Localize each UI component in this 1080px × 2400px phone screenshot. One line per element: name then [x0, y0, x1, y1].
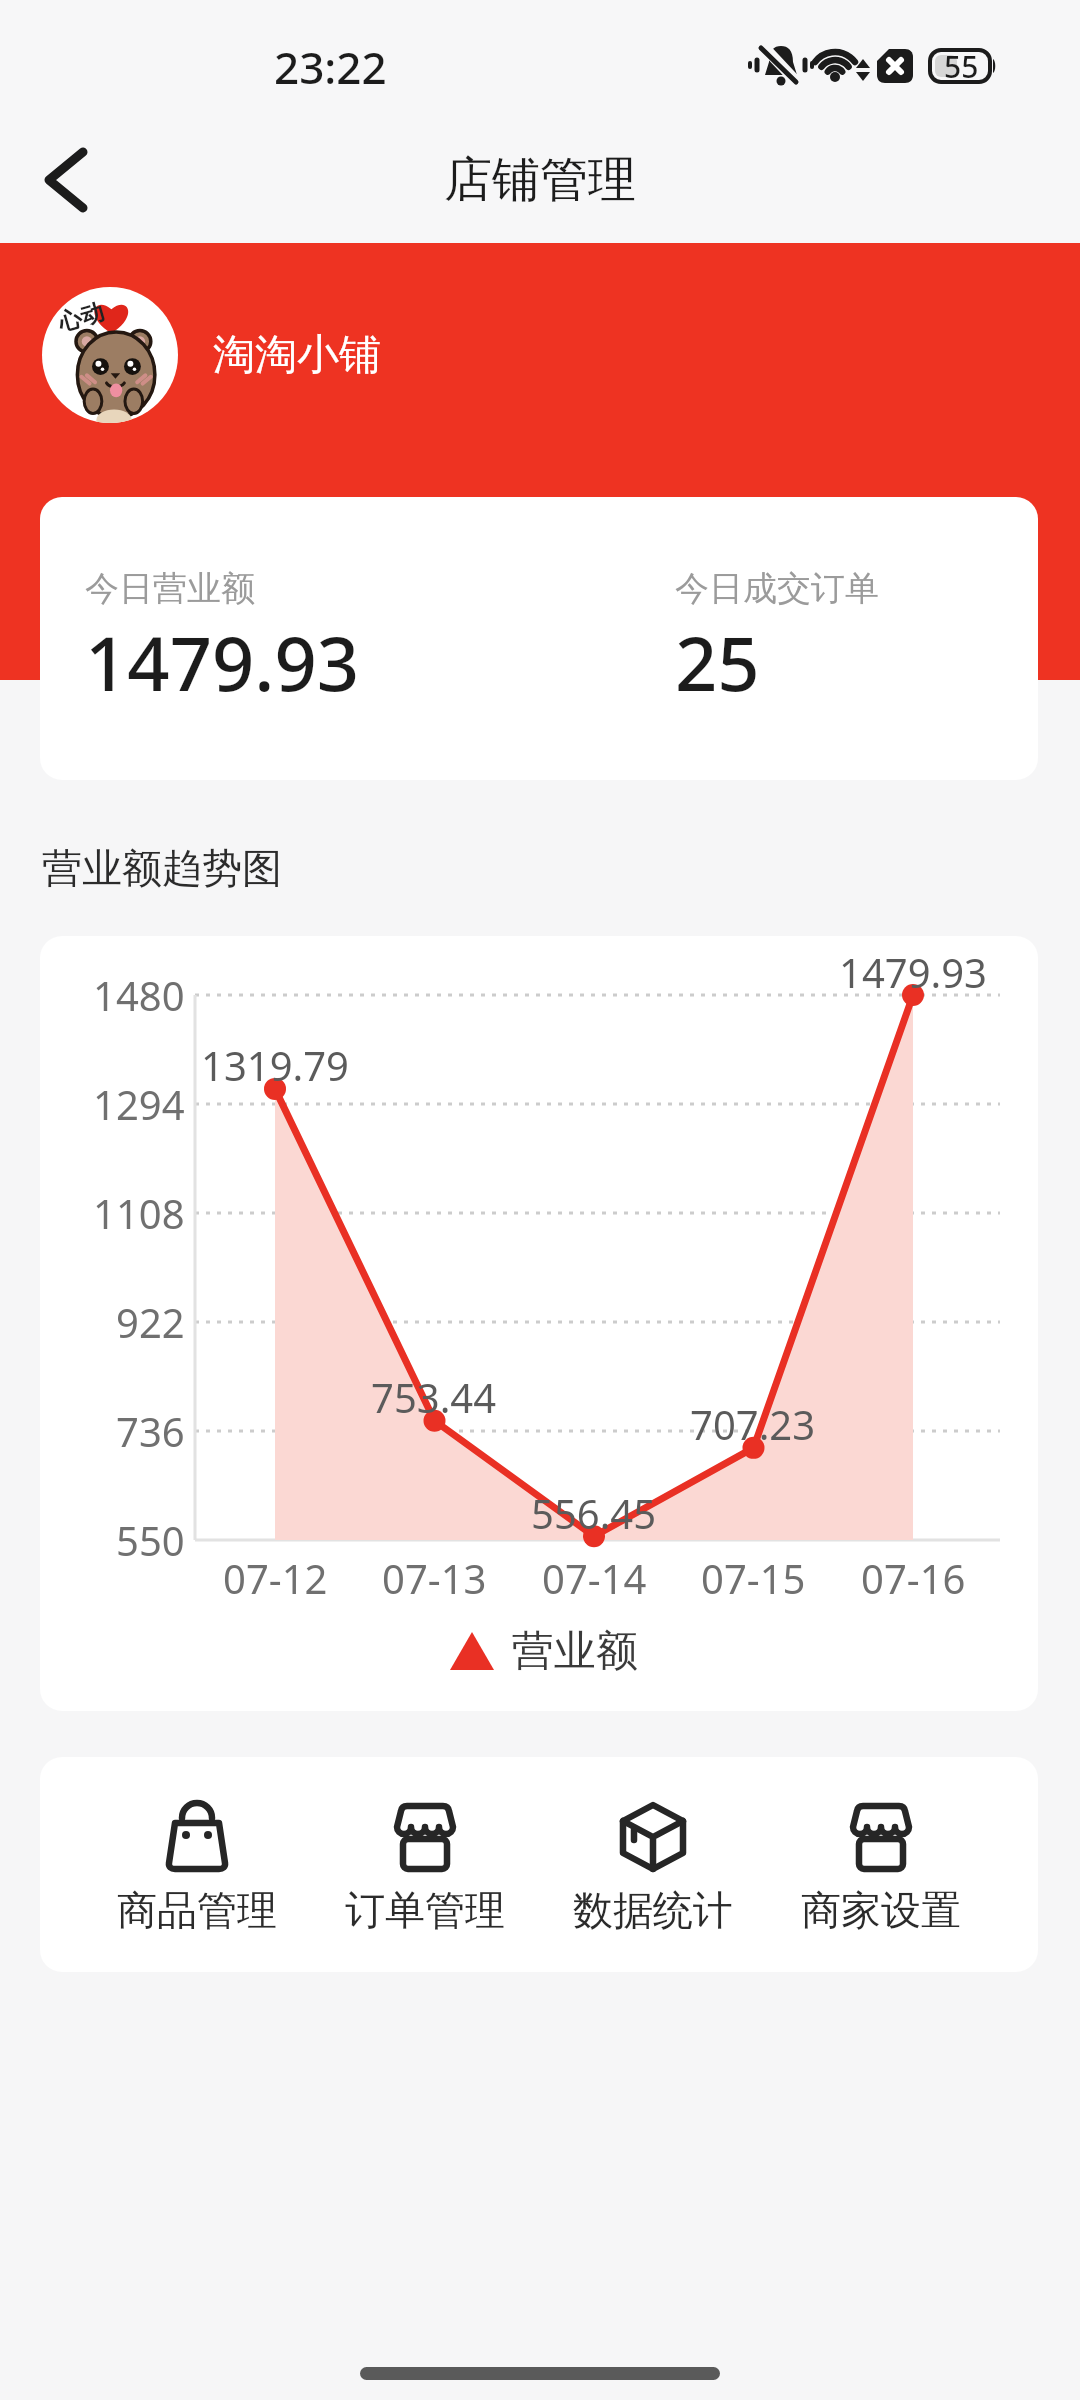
- staticText: 07-13: [382, 1551, 487, 1605]
- button[interactable]: 订单管理: [311, 1757, 539, 1972]
- staticText: 1294: [93, 1077, 185, 1131]
- staticText: 今日营业额: [85, 567, 255, 610]
- staticText: 922: [116, 1295, 185, 1349]
- staticText: 店铺管理: [444, 150, 636, 210]
- staticText: 1479.93: [839, 945, 987, 995]
- staticText: 营业额: [512, 1625, 638, 1678]
- staticText: 07-12: [223, 1551, 328, 1605]
- staticText: 07-16: [861, 1551, 966, 1605]
- button[interactable]: [25, 140, 105, 220]
- staticText: 1479.93: [85, 612, 360, 712]
- staticText: 淘淘小铺: [213, 329, 381, 382]
- staticText: 1480: [93, 968, 185, 1022]
- staticText: 07-15: [701, 1551, 806, 1605]
- staticText: 今日成交订单: [675, 567, 879, 610]
- staticText: 1108: [93, 1186, 185, 1240]
- staticText: 1319.79: [201, 1038, 349, 1088]
- staticText: 753.44: [371, 1370, 497, 1420]
- button[interactable]: 商品管理: [83, 1757, 311, 1972]
- staticText: 心动: [55, 297, 107, 338]
- button[interactable]: 心动: [42, 287, 178, 423]
- staticText: 数据统计: [573, 1885, 733, 1935]
- staticText: 订单管理: [345, 1885, 505, 1935]
- staticText: 23:22: [274, 37, 387, 97]
- staticText: 07-14: [542, 1551, 647, 1605]
- staticText: 736: [116, 1404, 185, 1458]
- staticText: 营业额趋势图: [42, 843, 282, 893]
- button[interactable]: 数据统计: [539, 1757, 767, 1972]
- staticText: 556.45: [531, 1486, 657, 1536]
- button[interactable]: 商家设置: [767, 1757, 995, 1972]
- staticText: 商家设置: [801, 1885, 961, 1935]
- staticText: 707.23: [690, 1397, 816, 1447]
- staticText: 25: [675, 612, 760, 712]
- staticText: 商品管理: [117, 1885, 277, 1935]
- staticText: 550: [116, 1513, 185, 1567]
- staticText: 55: [944, 46, 979, 86]
